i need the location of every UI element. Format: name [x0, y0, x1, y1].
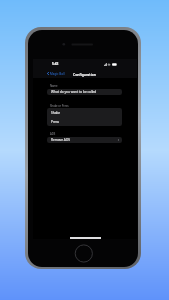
- staticText: ADS: [50, 132, 56, 136]
- staticText: What do you want to be called: [51, 90, 97, 94]
- staticText: Shake: [51, 111, 61, 115]
- staticText: Configuration: [73, 72, 96, 77]
- staticText: Magic Ball: [50, 72, 65, 76]
- button[interactable]: What do you want to be called: [47, 89, 122, 95]
- button[interactable]: Magic Ball: [33, 69, 69, 78]
- staticText: Remove ADS: [51, 138, 70, 142]
- staticText: 5:43: [52, 62, 59, 66]
- button[interactable]: Shake: [47, 108, 122, 117]
- button[interactable]: Press: [47, 117, 122, 126]
- staticText: Name: [50, 84, 58, 88]
- staticText: Press: [51, 120, 60, 124]
- button[interactable]: Remove ADS: [47, 137, 122, 143]
- staticText: Shake or Press: [50, 104, 69, 108]
